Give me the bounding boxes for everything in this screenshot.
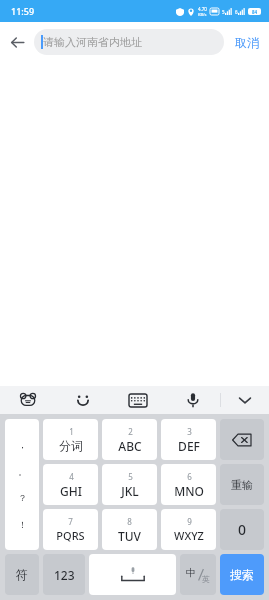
button[interactable]: 符 (5, 554, 39, 595)
staticText: ？ (18, 492, 27, 503)
button[interactable]: Backspace (220, 419, 264, 460)
staticText: WXYZ (174, 528, 204, 543)
button[interactable]: 3 (161, 419, 216, 460)
staticText: 取消 (235, 35, 259, 50)
staticText: KB/s (198, 12, 207, 17)
button[interactable]: 5 (102, 464, 157, 505)
button[interactable]: Hide keyboard (221, 386, 269, 414)
button[interactable]: 0 (220, 509, 264, 550)
button[interactable]: 搜索 (220, 554, 264, 595)
button[interactable]: Back (0, 25, 34, 59)
staticText: ABC (118, 438, 142, 454)
staticText: 4.70 (198, 6, 207, 12)
staticText: ， (18, 439, 27, 450)
staticText: 123 (54, 567, 75, 583)
staticText: MNO (174, 483, 204, 499)
button[interactable]: Keyboard layout (110, 386, 165, 414)
staticText: 0 (238, 520, 247, 539)
staticText: 11:59 (11, 5, 35, 17)
button[interactable]: 1 (43, 419, 98, 460)
button[interactable]: 取消 (224, 22, 269, 62)
button[interactable]: 请输入河南省内地址 (34, 29, 224, 55)
button[interactable]: 重输 (220, 464, 264, 505)
button[interactable]: 9 (161, 509, 216, 550)
staticText: 中 (186, 566, 196, 579)
button[interactable]: 6 (161, 464, 216, 505)
staticText: JKL (121, 483, 139, 499)
staticText: 请输入河南省内地址 (43, 35, 142, 49)
staticText: 6 (187, 471, 192, 482)
staticText: 搜索 (230, 567, 254, 582)
staticText: 4 (69, 471, 74, 482)
button[interactable]: 中 (180, 554, 216, 595)
staticText: ！ (18, 519, 27, 530)
button[interactable]: 7 (43, 509, 98, 550)
button[interactable]: 4 (43, 464, 98, 505)
staticText: GHI (60, 483, 82, 499)
staticText: 8 (127, 516, 132, 527)
button[interactable] (89, 554, 176, 595)
staticText: 重输 (231, 478, 253, 492)
staticText: 84 (252, 9, 258, 15)
button[interactable]: Voice input (165, 386, 220, 414)
staticText: 5 (128, 471, 133, 482)
staticText: 7 (68, 516, 73, 527)
staticText: 6 (235, 9, 238, 15)
button[interactable]: 2 (102, 419, 157, 460)
staticText: 分词 (59, 438, 83, 453)
staticText: 英 (202, 574, 210, 584)
staticText: 9 (187, 516, 192, 527)
button[interactable]: 8 (102, 509, 157, 550)
staticText: 符 (16, 567, 28, 582)
staticText: PQRS (56, 528, 85, 543)
button[interactable]: 123 (43, 554, 85, 595)
staticText: DEF (178, 438, 200, 454)
button[interactable]: Baidu input (0, 386, 55, 414)
button[interactable]: ， (5, 419, 39, 550)
button[interactable]: Emoji (55, 386, 110, 414)
staticText: 。 (18, 466, 27, 477)
staticText: 3 (187, 426, 192, 437)
staticText: 2 (128, 426, 133, 437)
staticText: 1 (69, 426, 74, 437)
staticText: TUV (118, 528, 141, 544)
staticText: 5 (222, 9, 225, 15)
